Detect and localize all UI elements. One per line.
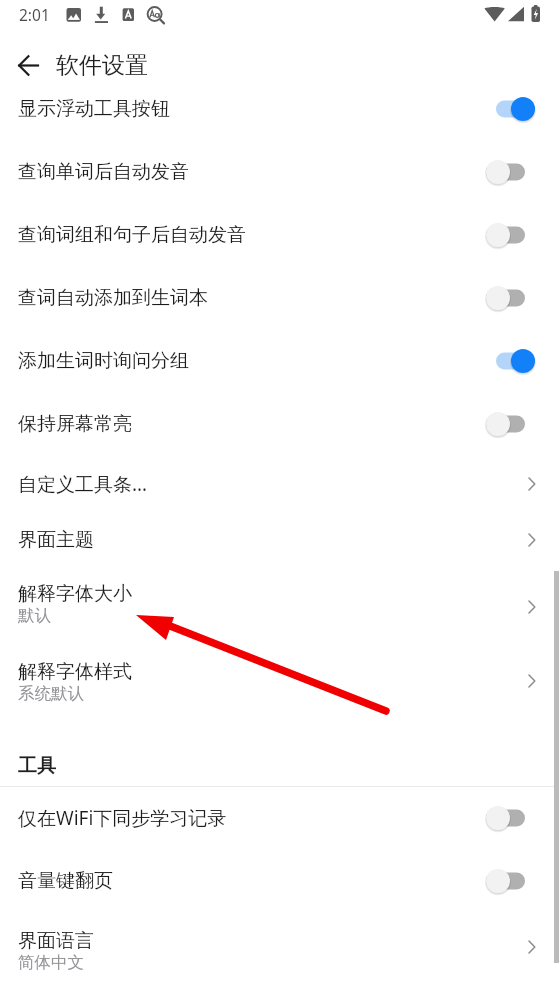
- staticText: 软件设置: [56, 51, 148, 80]
- button[interactable]: 自定义工具条…: [0, 455, 559, 512]
- staticText: 工具: [18, 754, 56, 778]
- staticText: 解释字体样式: [18, 660, 132, 684]
- staticText: 界面语言: [18, 929, 94, 953]
- button[interactable]: 查词自动添加到生词本: [0, 266, 559, 329]
- other: Open: [526, 599, 537, 615]
- staticText: 添加生词时询问分组: [18, 349, 189, 373]
- staticText: 显示浮动工具按钮: [18, 97, 170, 121]
- other: Open: [526, 532, 537, 548]
- button[interactable]: 显示浮动工具按钮: [0, 77, 559, 140]
- button[interactable]: 查询单词后自动发音: [0, 140, 559, 203]
- staticText: 保持屏幕常亮: [18, 412, 132, 436]
- staticText: 查询单词后自动发音: [18, 160, 189, 184]
- staticText: 仅在WiFi下同步学习记录: [18, 805, 227, 831]
- staticText: 音量键翻页: [18, 869, 113, 893]
- button[interactable]: Back: [0, 30, 56, 77]
- other: Open: [526, 939, 537, 955]
- button[interactable]: 解释字体大小: [0, 567, 559, 646]
- staticText: 简体中文: [18, 952, 84, 973]
- staticText: 解释字体大小: [18, 582, 132, 606]
- staticText: 界面主题: [18, 528, 94, 552]
- button[interactable]: 界面主题: [0, 512, 559, 567]
- button[interactable]: 查询词组和句子后自动发音: [0, 203, 559, 266]
- staticText: 系统默认: [18, 683, 84, 704]
- other: Open: [526, 673, 537, 689]
- button[interactable]: 仅在WiFi下同步学习记录: [0, 787, 559, 848]
- staticText: 自定义工具条…: [18, 471, 148, 497]
- staticText: 查词自动添加到生词本: [18, 286, 208, 310]
- button[interactable]: 音量键翻页: [0, 848, 559, 914]
- other: Open: [526, 476, 537, 492]
- button[interactable]: 保持屏幕常亮: [0, 392, 559, 455]
- staticText: 查询词组和句子后自动发音: [18, 223, 246, 247]
- button[interactable]: 界面语言: [0, 914, 559, 980]
- staticText: 2:01: [19, 4, 50, 25]
- button[interactable]: 解释字体样式: [0, 646, 559, 715]
- button[interactable]: 添加生词时询问分组: [0, 329, 559, 392]
- staticText: 默认: [18, 605, 51, 626]
